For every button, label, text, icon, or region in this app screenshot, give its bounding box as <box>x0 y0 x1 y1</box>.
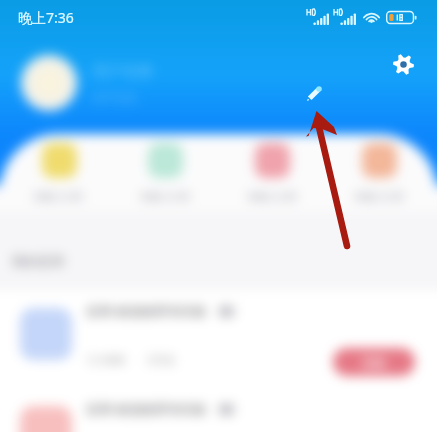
button[interactable]: 快捷入口区 <box>326 143 433 203</box>
button[interactable]: 应用 精选推荐专区版 <box>20 400 415 432</box>
button[interactable]: 快捷入口区 <box>219 143 326 203</box>
button[interactable]: Edit profile <box>305 85 323 103</box>
button[interactable]: 应用 精选推荐专区版 <box>20 302 415 376</box>
staticText: 我的应用 <box>12 253 64 269</box>
staticText: 安装 <box>362 355 386 370</box>
button[interactable]: 快捷入口区 <box>6 143 112 203</box>
staticText: 应用 精选推荐专区版 <box>86 302 207 320</box>
staticText: 用户名称 <box>93 62 153 81</box>
staticText: 应用 精选推荐专区版 <box>86 400 207 418</box>
staticText: 晚上7:36 <box>18 8 74 27</box>
staticText: 12.5MB <box>86 352 125 367</box>
button[interactable]: 安装 <box>333 348 415 376</box>
button[interactable]: 快捷入口区 <box>112 143 219 203</box>
button[interactable]: Settings <box>393 54 414 75</box>
